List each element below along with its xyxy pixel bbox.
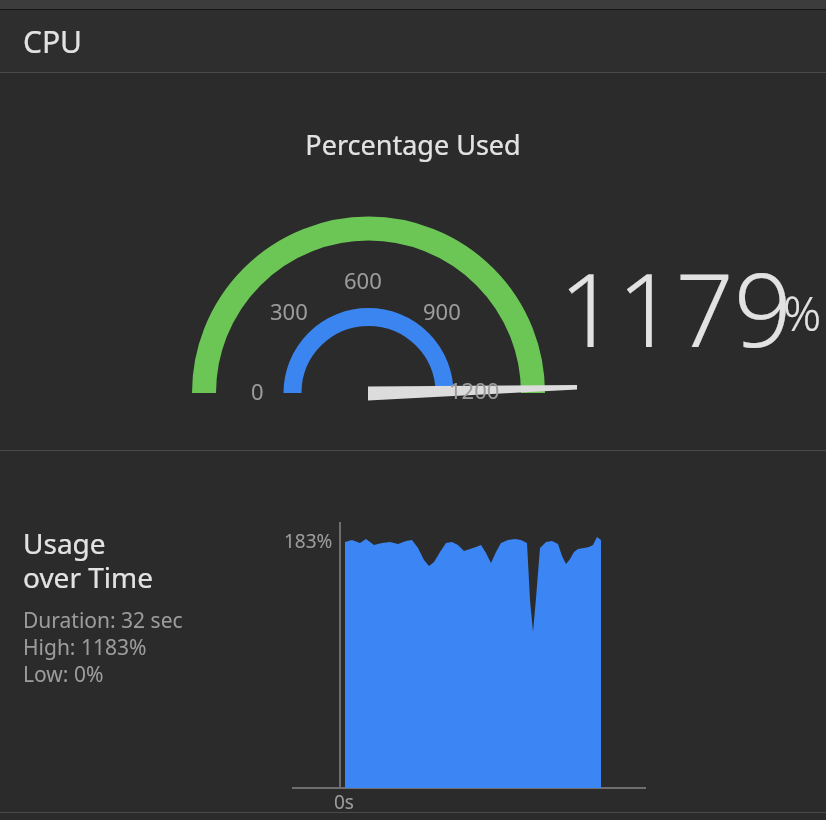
staticText: Duration: 32 sec xyxy=(23,606,183,635)
other: CPU percentage gauge xyxy=(0,0,826,820)
staticText: 1179 xyxy=(559,238,792,377)
button[interactable] xyxy=(0,451,826,812)
staticText: 600 xyxy=(344,265,382,295)
staticText: % xyxy=(783,281,822,345)
button[interactable]: CPU xyxy=(0,10,826,72)
staticText: 0 xyxy=(251,376,264,406)
staticText: 0s xyxy=(334,789,354,815)
staticText: Usage xyxy=(23,524,106,562)
staticText: CPU xyxy=(23,21,83,62)
staticText: over Time xyxy=(23,558,154,596)
staticText: 900 xyxy=(423,296,461,326)
staticText: 1200 xyxy=(449,375,500,405)
button[interactable]: Percentage Used xyxy=(0,73,826,450)
other: CPU usage over time chart xyxy=(0,0,826,820)
staticText: Percentage Used xyxy=(0,126,826,163)
staticText: 183% xyxy=(284,528,333,554)
staticText: High: 1183% xyxy=(23,633,147,662)
staticText: 300 xyxy=(270,296,308,326)
staticText: Low: 0% xyxy=(23,660,104,689)
